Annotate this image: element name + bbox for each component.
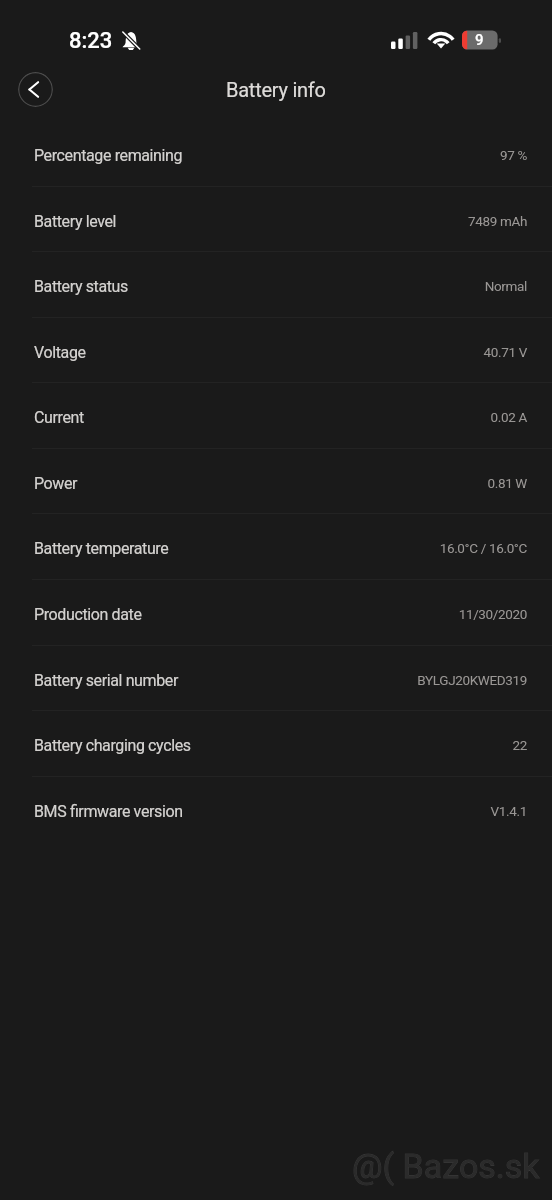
button[interactable]: Battery serial number xyxy=(0,645,552,711)
staticText: Battery charging cycles xyxy=(34,736,191,755)
staticText: 0.02 A xyxy=(490,409,527,425)
button[interactable]: Percentage remaining xyxy=(0,120,552,186)
staticText: 16.0°C / 16.0°C xyxy=(439,540,527,556)
staticText: Power xyxy=(34,474,78,493)
staticText: @( Bazos.sk xyxy=(352,1146,540,1186)
staticText: BMS firmware version xyxy=(34,802,183,821)
staticText: 7489 mAh xyxy=(468,213,527,229)
button[interactable]: BMS firmware version xyxy=(0,776,552,842)
staticText: BYLGJ20KWED319 xyxy=(417,672,527,688)
staticText: Battery serial number xyxy=(34,671,178,690)
button[interactable]: Battery level xyxy=(0,186,552,252)
staticText: Battery temperature xyxy=(34,539,169,558)
staticText: Percentage remaining xyxy=(34,146,183,165)
button[interactable]: Power xyxy=(0,448,552,514)
staticText: Production date xyxy=(34,605,142,624)
staticText: Current xyxy=(34,408,84,427)
staticText: V1.4.1 xyxy=(490,803,527,819)
staticText: 0.81 W xyxy=(487,475,527,491)
staticText: @( Bazos.sk xyxy=(352,1146,540,1186)
staticText: 97 % xyxy=(499,147,527,163)
button[interactable]: Battery temperature xyxy=(0,513,552,579)
button[interactable]: Current xyxy=(0,382,552,448)
staticText: 40.71 V xyxy=(483,344,527,360)
staticText: 22 xyxy=(512,737,527,753)
button[interactable]: Back xyxy=(18,72,53,107)
staticText: 9 xyxy=(475,31,484,49)
staticText: 8:23 xyxy=(69,28,113,54)
button[interactable]: Voltage xyxy=(0,317,552,383)
staticText: Battery info xyxy=(226,78,326,101)
button[interactable]: Battery charging cycles xyxy=(0,710,552,776)
button[interactable]: Production date xyxy=(0,579,552,645)
staticText: Voltage xyxy=(34,343,86,362)
staticText: Battery level xyxy=(34,212,117,231)
staticText: Normal xyxy=(484,278,527,294)
staticText: Battery status xyxy=(34,277,128,296)
button[interactable]: Battery status xyxy=(0,251,552,317)
staticText: 11/30/2020 xyxy=(458,606,527,622)
